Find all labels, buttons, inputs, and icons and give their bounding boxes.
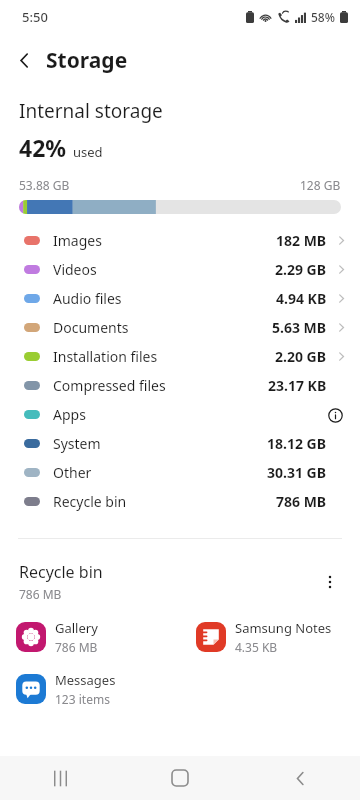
staticText: 786 MB [55, 639, 98, 655]
button[interactable]: Recycle bin [0, 487, 360, 516]
staticText: 58% [311, 9, 335, 25]
staticText: 53.88 GB [19, 177, 70, 193]
staticText: 23.17 KB [268, 376, 327, 395]
button[interactable]: Samsung Notes [180, 616, 360, 658]
button[interactable]: Messages [0, 668, 180, 710]
button[interactable]: Other [0, 458, 360, 487]
staticText: Videos [53, 260, 97, 279]
staticText: Audio files [53, 289, 122, 308]
staticText: Recycle bin [19, 561, 103, 583]
staticText: 786 MB [19, 586, 62, 602]
staticText: Gallery [55, 619, 98, 637]
button[interactable]: Videos [0, 255, 360, 284]
staticText: 128 GB [300, 177, 341, 193]
button[interactable]: Apps [0, 400, 360, 429]
staticText: 4.35 KB [235, 639, 278, 655]
button[interactable]: Apps info [324, 404, 346, 426]
button[interactable]: Documents [0, 313, 360, 342]
button[interactable]: Compressed files [0, 371, 360, 400]
staticText: 2.20 GB [275, 347, 327, 366]
staticText: Apps [53, 405, 86, 424]
button[interactable]: Images [0, 226, 360, 255]
staticText: 18.12 GB [267, 434, 327, 453]
staticText: 5:50 [22, 8, 48, 26]
staticText: Installation files [53, 347, 158, 366]
button[interactable]: Installation files [0, 342, 360, 371]
staticText: System [53, 434, 101, 453]
staticText: Other [53, 463, 92, 482]
staticText: Recycle bin [53, 492, 127, 511]
staticText: Documents [53, 318, 129, 337]
staticText: 786 MB [276, 492, 327, 511]
staticText: 5.63 MB [272, 318, 327, 337]
button[interactable]: Home [120, 756, 240, 800]
staticText: Compressed files [53, 376, 166, 395]
button[interactable]: Recent apps [0, 756, 120, 800]
staticText: 2.29 GB [275, 260, 327, 279]
staticText: Images [53, 231, 102, 250]
button[interactable]: Back [240, 756, 360, 800]
button[interactable]: Gallery [0, 616, 180, 658]
staticText: Internal storage [19, 98, 163, 124]
staticText: Samsung Notes [235, 619, 332, 637]
staticText: 4.94 KB [276, 289, 327, 308]
button[interactable]: Navigate up [0, 36, 48, 84]
staticText: 182 MB [276, 231, 327, 250]
staticText: Messages [55, 671, 116, 689]
staticText: used [73, 143, 103, 161]
staticText: Storage [46, 46, 128, 75]
staticText: 42% [19, 132, 67, 163]
button[interactable]: More options [312, 564, 348, 600]
button[interactable]: System [0, 429, 360, 458]
staticText: 123 items [55, 691, 110, 707]
button[interactable]: Audio files [0, 284, 360, 313]
staticText: 30.31 GB [267, 463, 327, 482]
